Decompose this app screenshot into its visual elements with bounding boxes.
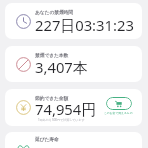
button[interactable]: 禁煙できた本数 bbox=[5, 46, 142, 82]
staticText: 節約できた金額 bbox=[35, 95, 69, 101]
staticText: このお金で買えるもの bbox=[104, 111, 133, 115]
button[interactable]: 節約できた金額 bbox=[5, 89, 142, 126]
button[interactable]: あなたの禁煙時間 bbox=[5, 3, 142, 39]
staticText: 延びた寿命 bbox=[35, 136, 59, 142]
staticText: 禁煙できた本数 bbox=[35, 52, 69, 58]
staticText: 74,954円 bbox=[35, 99, 97, 119]
button[interactable]: 延びた寿命 bbox=[5, 132, 142, 148]
staticText: 227日03:31:23 bbox=[35, 15, 134, 35]
staticText: あなたの禁煙時間 bbox=[35, 9, 73, 15]
button[interactable]: Shop bbox=[106, 97, 132, 110]
staticText: 3,407本 bbox=[35, 57, 88, 77]
staticText: 1箱あたり500円で計算しています bbox=[38, 118, 85, 122]
